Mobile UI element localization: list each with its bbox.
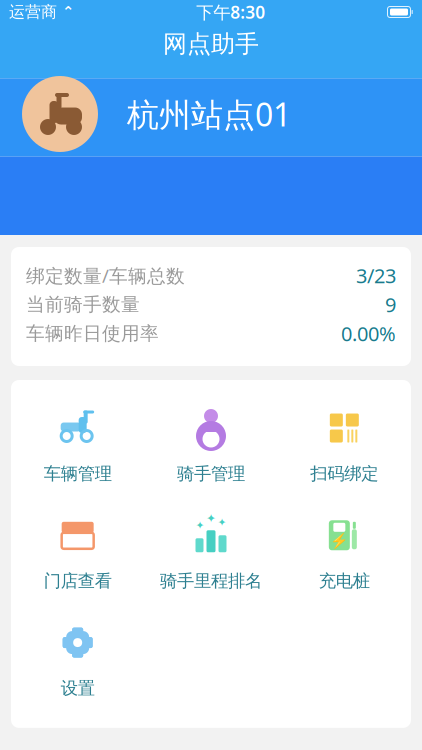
staticText: ⌃ — [62, 4, 74, 20]
staticText: 9 — [385, 291, 396, 318]
button[interactable]: ⚡ — [278, 499, 411, 607]
button[interactable]: 扫码绑定 — [278, 392, 411, 499]
staticText: 门店查看 — [44, 570, 112, 592]
staticText: 车辆昨日使用率 — [26, 322, 159, 345]
staticText: ✦ — [195, 519, 204, 531]
button[interactable]: 门店查看 — [11, 499, 144, 607]
staticText: 3/23 — [356, 262, 396, 289]
button[interactable]: 骑手管理 — [144, 392, 278, 499]
staticText: 当前骑手数量 — [26, 293, 140, 316]
staticText: 扫码绑定 — [310, 463, 378, 484]
staticText: 骑手管理 — [177, 463, 245, 484]
staticText: 充电桩 — [319, 570, 370, 592]
staticText: 骑手里程排名 — [160, 570, 262, 592]
staticText: 运营商 — [9, 2, 57, 22]
staticText: 设置 — [61, 678, 95, 699]
staticText: ✦ — [217, 516, 226, 528]
staticText: 下午8:30 — [196, 0, 265, 23]
staticText: 车辆管理 — [44, 463, 112, 484]
button[interactable]: 设置 — [11, 607, 144, 714]
staticText: ⚡ — [330, 533, 348, 550]
button[interactable]: ✦ — [144, 499, 278, 607]
button[interactable]: 车辆管理 — [11, 392, 144, 499]
staticText: ✦ — [206, 511, 216, 525]
staticText: 绑定数量/车辆总数 — [26, 263, 185, 288]
staticText: 网点助手 — [163, 29, 259, 59]
staticText: 杭州站点01 — [127, 93, 291, 135]
staticText: 0.00% — [341, 320, 396, 347]
